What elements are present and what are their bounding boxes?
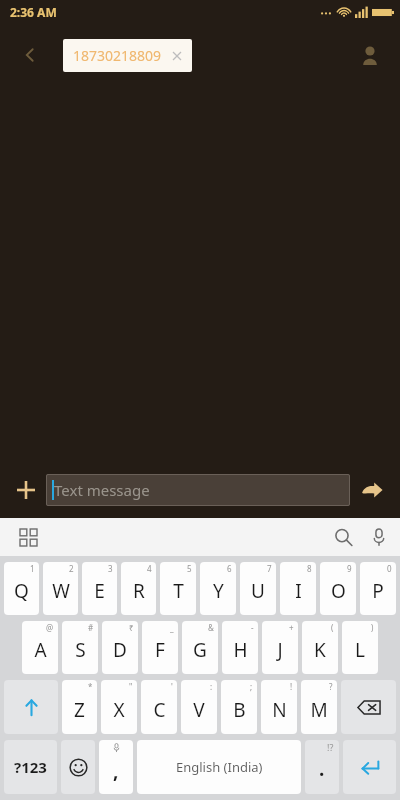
staticText: Text message (54, 480, 150, 500)
button[interactable]: # (62, 621, 98, 674)
button[interactable]: Backspace (341, 680, 396, 734)
staticText: ?123 (14, 757, 47, 777)
staticText: U (251, 578, 265, 604)
button[interactable]: 18730218809 (63, 39, 192, 72)
button[interactable]: Contacts (348, 33, 392, 77)
button[interactable]: _ (142, 621, 178, 674)
button[interactable]: 8 (280, 562, 316, 615)
staticText: W (52, 578, 70, 604)
button[interactable]: Send (350, 468, 394, 512)
staticText: 2:36 AM (10, 4, 57, 20)
button[interactable]: ; (221, 680, 257, 734)
staticText: 3 (108, 563, 113, 574)
staticText: @ (46, 622, 54, 633)
staticText: + (289, 622, 294, 633)
button[interactable]: 7 (240, 562, 276, 615)
staticText: A (34, 637, 47, 663)
staticText: 7 (267, 563, 272, 574)
button[interactable] (4, 680, 58, 734)
button[interactable]: ' (141, 680, 177, 734)
button[interactable]: Add attachment (6, 470, 46, 510)
staticText: O (331, 578, 346, 604)
staticText: " (129, 681, 133, 692)
button[interactable]: 4 (121, 562, 156, 615)
staticText: P (372, 578, 384, 604)
staticText: C (153, 697, 166, 723)
staticText: D (113, 637, 127, 663)
staticText: 1 (30, 563, 35, 574)
button[interactable]: Comma (99, 740, 133, 794)
staticText: ) (371, 622, 374, 633)
staticText: ; (250, 681, 253, 692)
button[interactable]: ₹ (102, 621, 138, 674)
button[interactable]: English (India) (137, 740, 301, 794)
button[interactable]: 1 (4, 562, 39, 615)
button[interactable]: " (101, 680, 137, 734)
staticText: L (355, 637, 365, 663)
button[interactable]: Back (8, 33, 52, 77)
staticText: K (314, 637, 326, 663)
staticText: N (272, 697, 287, 723)
button[interactable]: 5 (160, 562, 196, 615)
staticText: ₹ (129, 622, 134, 633)
staticText: V (193, 697, 205, 723)
button[interactable]: ? (301, 680, 337, 734)
staticText: !? (327, 741, 334, 753)
staticText: 0 (387, 563, 392, 574)
staticText: 8 (307, 563, 312, 574)
button[interactable]: & (182, 621, 218, 674)
staticText: : (210, 681, 213, 692)
staticText: R (133, 578, 145, 604)
button[interactable]: + (262, 621, 298, 674)
staticText: J (277, 637, 283, 663)
staticText: 5 (187, 563, 192, 574)
staticText: F (155, 637, 165, 663)
staticText: E (94, 578, 105, 604)
button[interactable]: Emoji (61, 740, 95, 794)
staticText: Z (74, 697, 85, 723)
staticText: T (173, 578, 184, 604)
button[interactable]: Enter (343, 740, 396, 794)
staticText: - (251, 622, 254, 633)
button[interactable]: ! (261, 680, 297, 734)
button[interactable]: 9 (320, 562, 356, 615)
staticText: 6 (227, 563, 232, 574)
button[interactable]: Voice input (362, 518, 396, 556)
button[interactable]: Text message (46, 474, 350, 506)
button[interactable]: Search (324, 518, 362, 556)
staticText: Y (213, 578, 224, 604)
button[interactable]: ( (302, 621, 338, 674)
staticText: English (India) (176, 758, 263, 776)
button[interactable]: ?123 (4, 740, 57, 794)
staticText: . (319, 756, 325, 782)
staticText: 18730218809 (73, 46, 162, 65)
staticText: S (75, 637, 86, 663)
staticText: ' (171, 681, 173, 692)
staticText: * (88, 681, 93, 692)
staticText: X (113, 697, 125, 723)
staticText: 9 (347, 563, 352, 574)
button[interactable]: - (222, 621, 258, 674)
button[interactable]: Period (305, 740, 339, 794)
staticText: , (113, 758, 119, 784)
staticText: M (310, 697, 328, 723)
staticText: I (295, 578, 302, 604)
button[interactable]: Keyboard options (12, 521, 44, 553)
button[interactable]: 2 (43, 562, 78, 615)
button[interactable]: 6 (200, 562, 236, 615)
button[interactable]: ) (342, 621, 378, 674)
button[interactable]: 3 (82, 562, 117, 615)
staticText: 4 (147, 563, 152, 574)
staticText: ? (329, 681, 333, 692)
staticText: _ (170, 622, 174, 633)
button[interactable]: : (181, 680, 217, 734)
staticText: 2 (69, 563, 74, 574)
button[interactable]: 0 (360, 562, 396, 615)
button[interactable]: @ (22, 621, 58, 674)
staticText: & (208, 622, 214, 633)
staticText: H (233, 637, 248, 663)
staticText: G (193, 637, 207, 663)
staticText: ! (290, 681, 293, 692)
button[interactable]: * (62, 680, 97, 734)
staticText: # (88, 622, 94, 633)
